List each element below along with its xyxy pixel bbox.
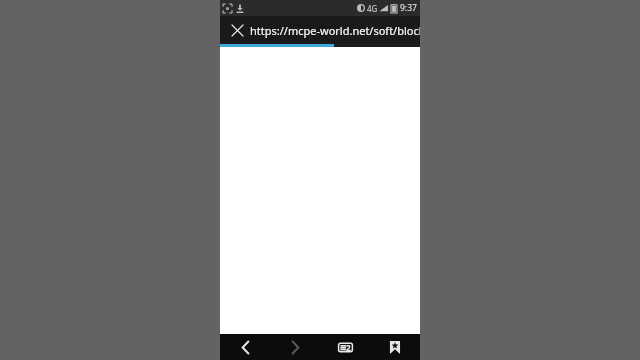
staticText: 2 xyxy=(346,342,351,353)
button[interactable]: Close xyxy=(228,21,246,39)
staticText: 9:37 xyxy=(400,2,417,14)
button[interactable]: Close xyxy=(220,16,420,44)
staticText: 4G xyxy=(367,3,378,14)
staticText: https://mcpe-world.net/soft/blocklau xyxy=(250,23,420,38)
button[interactable]: Forward xyxy=(270,334,320,360)
button[interactable]: Back xyxy=(220,334,270,360)
button[interactable]: Bookmarks xyxy=(370,334,420,360)
button[interactable]: Tabs xyxy=(320,334,370,360)
